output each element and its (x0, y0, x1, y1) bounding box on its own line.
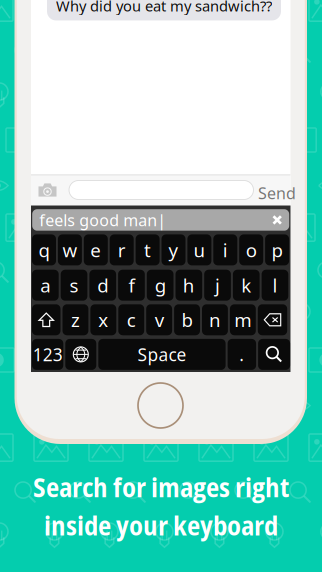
staticText: u (193, 237, 205, 262)
button[interactable]: w (58, 234, 82, 265)
staticText: a (40, 273, 50, 298)
staticText: l (272, 273, 277, 298)
staticText: Search for images right (33, 469, 289, 505)
staticText: y (168, 237, 178, 262)
staticText: r (118, 237, 126, 262)
staticText: feels good man| (39, 209, 166, 230)
staticText: g (155, 273, 166, 298)
button[interactable]: Next keyboard (65, 339, 96, 370)
staticText: v (155, 307, 164, 332)
button[interactable]: j (204, 270, 231, 301)
button[interactable]: Delete (258, 304, 287, 335)
button[interactable]: p (265, 234, 289, 265)
button[interactable]: u (187, 234, 211, 265)
staticText: e (90, 237, 101, 262)
button[interactable]: m (230, 304, 256, 335)
staticText: n (209, 307, 221, 332)
staticText: x (98, 307, 108, 332)
button[interactable]: l (262, 270, 288, 301)
staticText: s (69, 273, 78, 298)
staticText: w (62, 237, 77, 262)
button[interactable]: d (89, 270, 116, 301)
staticText: Why did you eat my sandwich?? (56, 0, 272, 15)
button[interactable]: Search (258, 339, 290, 370)
staticText: Space (137, 343, 186, 366)
button[interactable]: i (213, 234, 237, 265)
staticText: h (183, 273, 195, 298)
button[interactable]: 123 (32, 339, 63, 370)
button[interactable]: v (146, 304, 172, 335)
staticText: b (181, 307, 192, 332)
staticText: k (241, 273, 251, 298)
button[interactable]: Clear search (272, 215, 282, 225)
button[interactable]: k (233, 270, 260, 301)
staticText: f (128, 273, 134, 298)
staticText: m (234, 307, 251, 332)
button[interactable]: g (147, 270, 173, 301)
button[interactable]: b (174, 304, 200, 335)
staticText: c (127, 307, 136, 332)
button[interactable]: t (136, 234, 160, 265)
button[interactable]: h (175, 270, 202, 301)
staticText: Send (258, 182, 296, 204)
button[interactable]: r (110, 234, 134, 265)
button[interactable]: Space (98, 339, 226, 370)
button[interactable]: x (90, 304, 116, 335)
button[interactable]: a (32, 270, 59, 301)
button[interactable]: e (84, 234, 108, 265)
staticText: inside your keyboard (44, 507, 278, 543)
button[interactable]: Shift (32, 304, 60, 335)
button[interactable]: s (61, 270, 87, 301)
staticText: i (223, 237, 228, 262)
button[interactable]: c (118, 304, 144, 335)
button[interactable]: o (239, 234, 263, 265)
staticText: t (144, 237, 151, 262)
button[interactable]: q (32, 234, 56, 265)
staticText: q (38, 237, 49, 262)
button[interactable]: z (62, 304, 88, 335)
staticText: d (97, 273, 108, 298)
button[interactable]: n (202, 304, 228, 335)
staticText: p (272, 237, 283, 262)
button[interactable]: y (161, 234, 185, 265)
button[interactable]: f (118, 270, 145, 301)
staticText: z (71, 307, 80, 332)
staticText: j (215, 273, 220, 298)
button[interactable]: . (228, 339, 256, 370)
staticText: . (239, 343, 244, 366)
staticText: o (246, 237, 257, 262)
staticText: 123 (33, 343, 63, 366)
